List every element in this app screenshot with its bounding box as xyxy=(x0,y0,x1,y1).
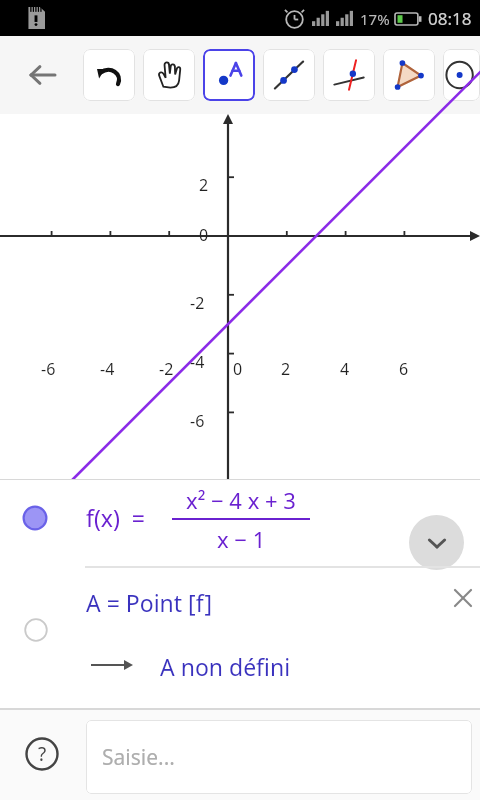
button[interactable]: Saisie... xyxy=(86,720,472,794)
staticText: ? xyxy=(38,741,47,767)
button[interactable]: Back xyxy=(20,53,64,97)
staticText: 08:18 xyxy=(428,7,472,30)
staticText: 0 xyxy=(199,224,209,246)
staticText: -2 xyxy=(190,292,205,314)
button[interactable]: Circle xyxy=(443,49,480,101)
staticText: f(x) = xyxy=(86,502,145,533)
staticText: 2 xyxy=(199,174,209,196)
staticText: 0 xyxy=(233,358,243,380)
button[interactable]: Polygon xyxy=(383,49,435,101)
staticText: Saisie... xyxy=(102,743,175,772)
staticText: x² − 4 x + 3 xyxy=(186,485,296,515)
button[interactable]: Close xyxy=(450,585,476,611)
staticText: A = Point [f] xyxy=(86,587,213,618)
staticText: 2 xyxy=(281,358,291,380)
staticText: A non défini xyxy=(160,651,291,682)
button[interactable]: Toggle visibility A xyxy=(24,618,48,642)
button[interactable]: Undo xyxy=(83,49,135,101)
button[interactable]: Perpendicular line xyxy=(323,49,375,101)
staticText: -6 xyxy=(41,358,56,380)
staticText: -4 xyxy=(190,351,205,373)
button[interactable]: Toggle visibility f xyxy=(22,505,48,531)
button[interactable]: Point xyxy=(203,49,255,101)
staticText: 6 xyxy=(399,358,409,380)
button[interactable]: Help xyxy=(22,734,62,774)
staticText: -4 xyxy=(100,358,115,380)
button[interactable]: Line xyxy=(263,49,315,101)
staticText: -6 xyxy=(190,410,205,432)
staticText: 4 xyxy=(340,358,350,380)
button[interactable]: Move xyxy=(143,49,195,101)
staticText: 17% xyxy=(360,9,390,29)
staticText: -2 xyxy=(159,358,174,380)
staticText: x − 1 xyxy=(217,524,266,554)
button[interactable]: Expand xyxy=(409,515,464,570)
